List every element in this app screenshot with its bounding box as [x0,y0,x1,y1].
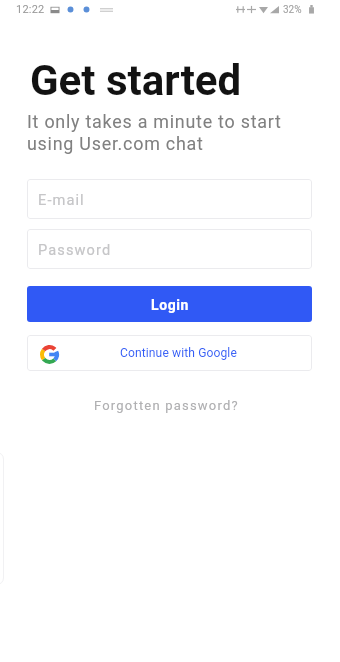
button[interactable]: Forgotten password? [88,394,245,417]
staticText: Get started [30,56,242,105]
staticText: It only takes a minute to start using Us… [27,111,282,155]
staticText: Password [38,241,112,258]
staticText: Login [151,297,190,313]
staticText: E-mail [38,191,85,208]
staticText: Continue with Google [120,346,237,360]
button[interactable]: E-mail [27,179,312,219]
button[interactable]: Password [27,229,312,269]
staticText: 32% [283,4,302,16]
staticText: 12:22 [16,3,45,16]
staticText: Forgotten password? [94,398,239,413]
button[interactable]: Login [27,286,312,322]
button[interactable]: Continue with Google [27,335,312,371]
